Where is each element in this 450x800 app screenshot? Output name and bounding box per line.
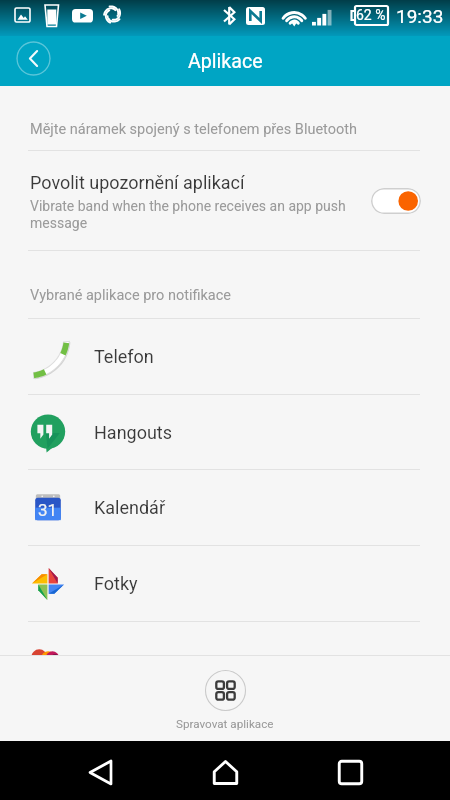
staticText: Mějte náramek spojený s telefonem přes B… [30, 121, 357, 138]
button[interactable]: Back [62, 743, 138, 800]
staticText: Kalendář [94, 497, 165, 518]
staticText: Spravovat aplikace [176, 717, 274, 731]
staticText: Hangouts [94, 422, 173, 443]
button[interactable]: Hangouts [0, 395, 450, 470]
button[interactable]: Fotky [0, 546, 450, 621]
button[interactable]: Povolit upozornění aplikací [371, 188, 421, 214]
staticText: Aplikace [188, 50, 263, 73]
staticText: Fotky [94, 573, 138, 594]
staticText: 31 [38, 500, 58, 520]
button[interactable]: Telefon [0, 319, 450, 394]
staticText: Vibrate band when the phone receives an … [30, 198, 346, 232]
button[interactable]: Back [16, 41, 51, 76]
staticText: Povolit upozornění aplikací [30, 172, 245, 193]
button[interactable]: Povolit upozornění aplikací [0, 151, 450, 250]
button[interactable]: 31 [0, 470, 450, 545]
button[interactable]: Recent apps [312, 743, 388, 800]
button[interactable]: Spravovat aplikace [0, 656, 450, 741]
button[interactable] [0, 622, 450, 655]
button[interactable]: Home [187, 743, 263, 800]
staticText: 19:33 [396, 5, 444, 27]
staticText: Telefon [94, 346, 154, 367]
staticText: 62 % [356, 7, 386, 23]
staticText: Vybrané aplikace pro notifikace [30, 287, 232, 304]
